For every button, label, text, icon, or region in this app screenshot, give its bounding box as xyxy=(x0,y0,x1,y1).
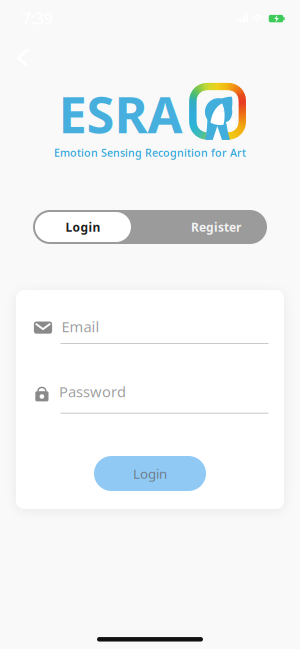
button[interactable]: Login xyxy=(94,456,206,491)
staticText: Emotion Sensing Recognition for Art xyxy=(54,145,246,160)
staticText: Login xyxy=(133,465,167,482)
button[interactable]: Login xyxy=(35,212,131,242)
staticText: Email xyxy=(61,317,99,336)
staticText: Login xyxy=(65,219,100,235)
staticText: Password xyxy=(59,382,126,401)
staticText: Register xyxy=(191,219,241,235)
staticText: ESRA xyxy=(58,80,182,147)
button[interactable]: Register xyxy=(161,210,271,244)
